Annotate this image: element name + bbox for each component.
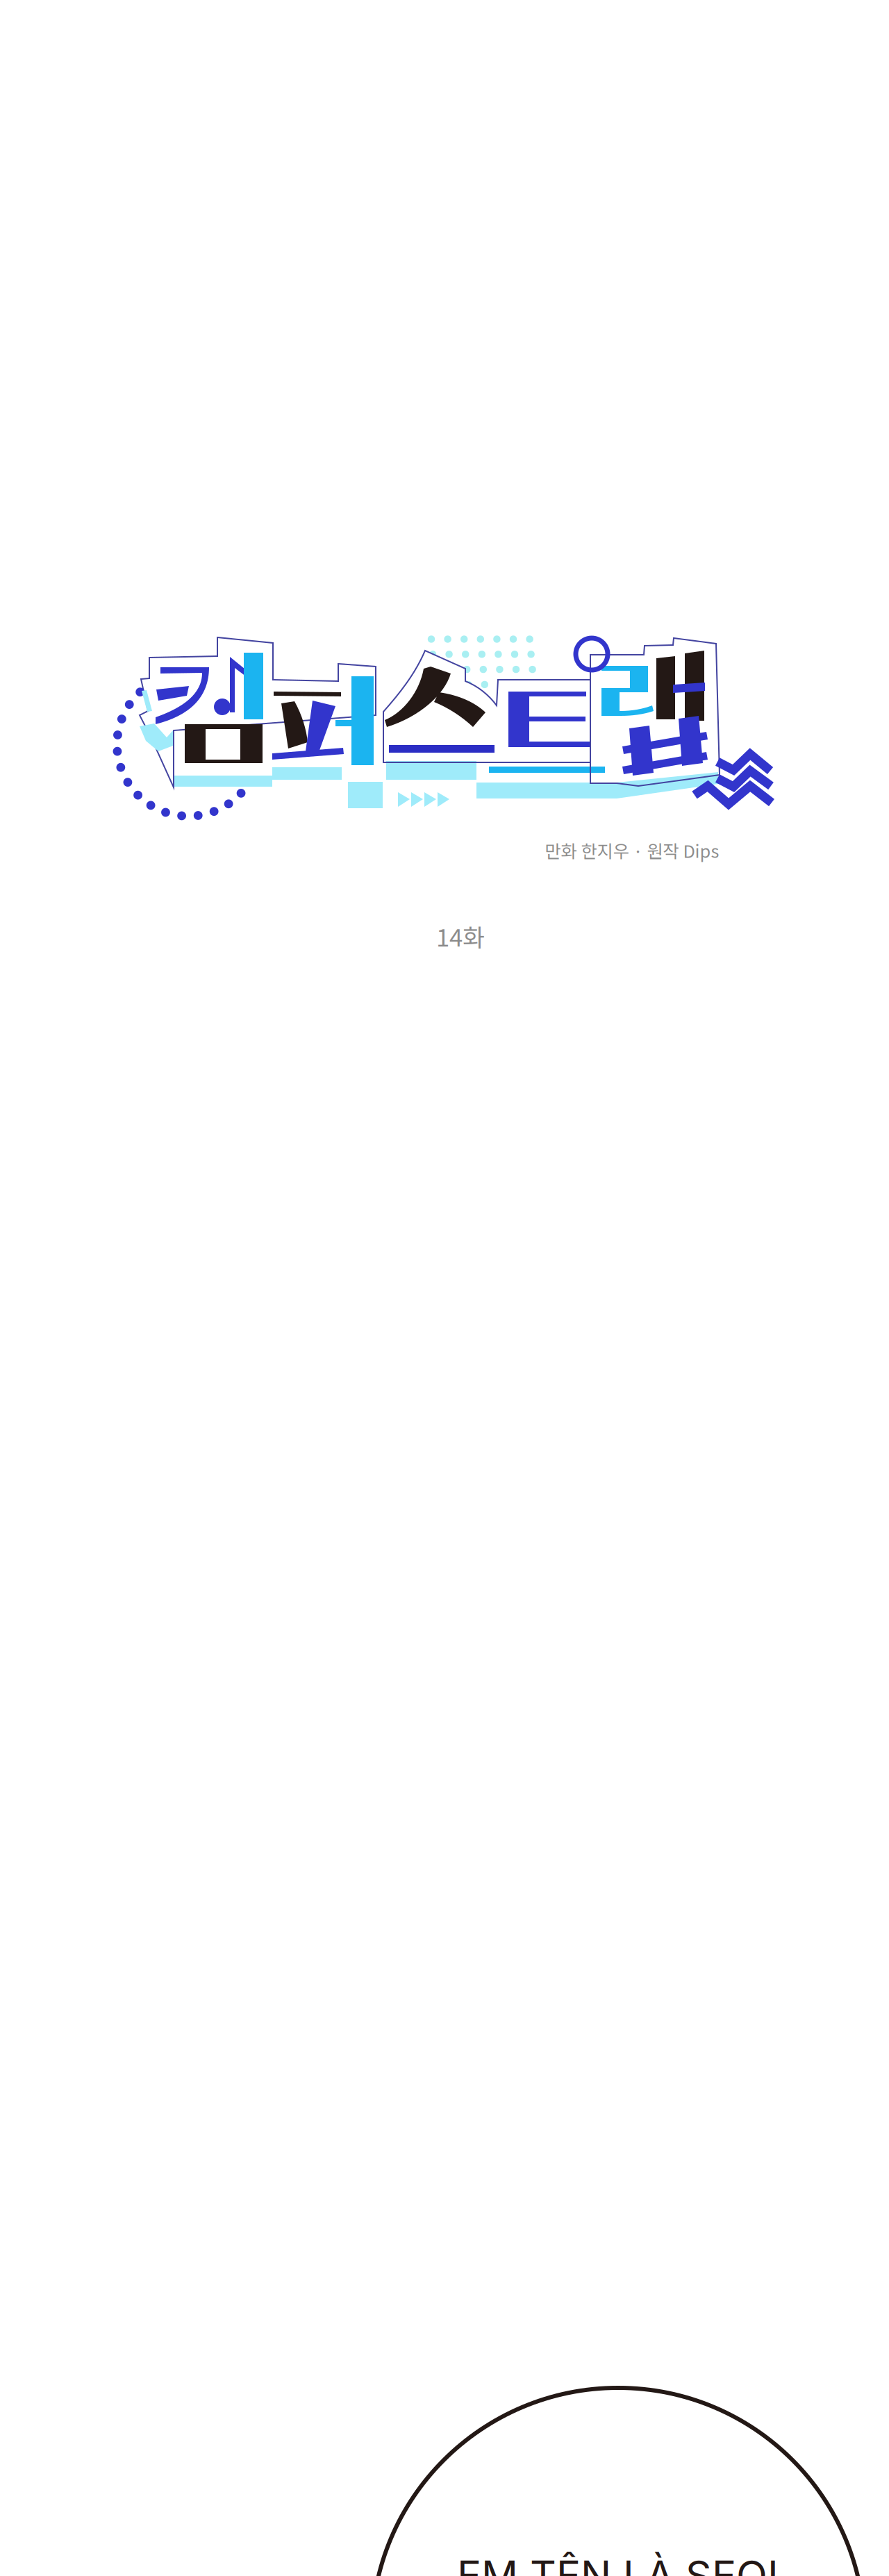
staticText: 14화 <box>436 919 485 953</box>
staticText: EM TÊN LÀ SEOL <box>457 2551 790 2576</box>
staticText: 만화 한지우 · 원작 Dips <box>545 837 719 863</box>
